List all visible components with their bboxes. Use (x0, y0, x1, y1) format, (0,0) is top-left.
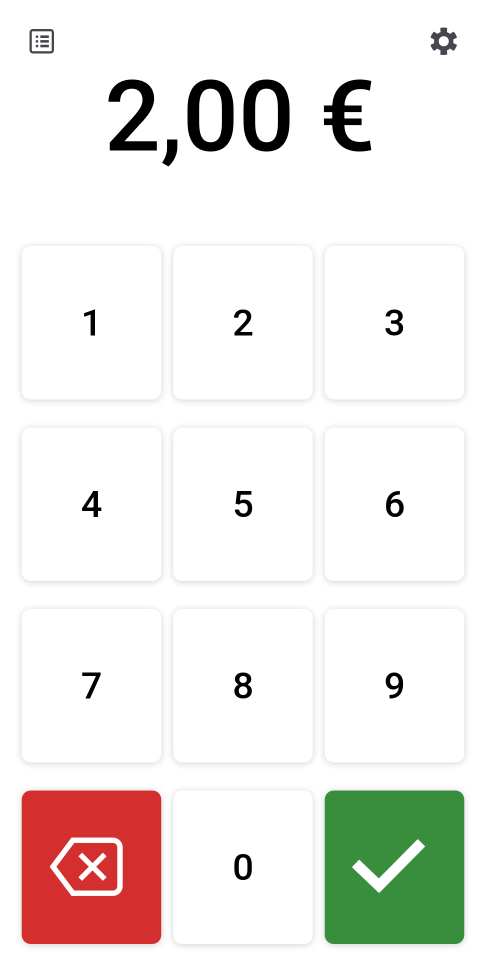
staticText: 1 (81, 301, 102, 345)
button[interactable]: Delete (22, 790, 161, 944)
button[interactable]: 7 (22, 609, 161, 762)
staticText: 3 (384, 301, 405, 345)
button[interactable]: 3 (325, 246, 464, 399)
staticText: 8 (232, 664, 253, 708)
button[interactable]: 2 (173, 246, 313, 399)
button[interactable]: 1 (22, 246, 161, 399)
staticText: 5 (232, 482, 253, 526)
staticText: 2,00 € (104, 59, 375, 175)
button[interactable]: 0 (173, 790, 313, 944)
staticText: 2 (232, 301, 253, 345)
staticText: 7 (81, 664, 102, 708)
staticText: 0 (232, 845, 253, 889)
button[interactable]: 9 (325, 609, 464, 762)
button[interactable]: 6 (325, 427, 464, 581)
staticText: 4 (81, 482, 102, 526)
button[interactable]: Confirm (325, 790, 464, 944)
button[interactable]: Transactions (20, 21, 62, 61)
staticText: 9 (384, 664, 405, 708)
button[interactable]: 8 (173, 609, 313, 762)
button[interactable]: 5 (173, 427, 313, 581)
staticText: 6 (384, 482, 405, 526)
button[interactable]: Settings (422, 19, 466, 63)
button[interactable]: 4 (22, 427, 161, 581)
